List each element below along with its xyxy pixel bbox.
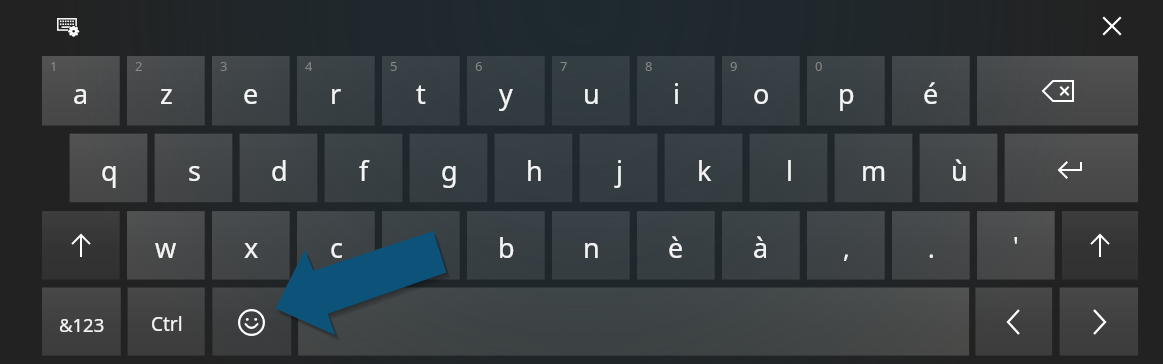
staticText: 4: [305, 57, 313, 75]
staticText: m: [861, 152, 887, 189]
staticText: p: [838, 75, 855, 112]
button[interactable]: 9: [722, 56, 800, 126]
staticText: x: [244, 229, 259, 266]
button[interactable]: Close: [1096, 10, 1127, 41]
button[interactable]: Keyboard settings: [50, 11, 84, 41]
staticText: 5: [390, 57, 398, 75]
button[interactable]: b: [467, 211, 545, 280]
button[interactable]: c: [297, 211, 375, 280]
button[interactable]: 1: [42, 56, 120, 126]
button[interactable]: h: [495, 134, 573, 203]
button[interactable]: l: [750, 134, 828, 203]
staticText: q: [101, 152, 118, 189]
button[interactable]: ù: [920, 134, 998, 203]
button[interactable]: ': [977, 211, 1055, 280]
button[interactable]: 2: [127, 56, 205, 126]
button[interactable]: Cursor right: [1060, 288, 1138, 356]
staticText: à: [753, 229, 769, 266]
staticText: 6: [475, 57, 483, 75]
button[interactable]: Shift: [42, 211, 120, 280]
button[interactable]: &123: [42, 288, 121, 356]
button[interactable]: 0: [807, 56, 885, 126]
button[interactable]: Backspace: [977, 56, 1138, 126]
staticText: v: [414, 229, 428, 266]
button[interactable]: ,: [807, 211, 885, 280]
button[interactable]: w: [127, 211, 205, 280]
button[interactable]: m: [835, 134, 913, 203]
button[interactable]: 8: [637, 56, 715, 126]
staticText: b: [498, 229, 515, 266]
button[interactable]: 6: [467, 56, 545, 126]
staticText: 3: [220, 57, 228, 75]
button[interactable]: 7: [552, 56, 630, 126]
staticText: s: [188, 152, 201, 189]
staticText: z: [160, 75, 173, 112]
button[interactable]: Emoji: [212, 288, 291, 356]
button[interactable]: v: [382, 211, 460, 280]
button[interactable]: s: [155, 134, 233, 203]
staticText: ': [1013, 228, 1019, 262]
button[interactable]: Cursor left: [975, 288, 1052, 356]
staticText: t: [416, 75, 426, 112]
staticText: k: [697, 152, 712, 189]
staticText: 2: [135, 57, 143, 75]
staticText: ,: [843, 231, 850, 265]
button[interactable]: à: [722, 211, 800, 280]
staticText: 1: [50, 57, 58, 75]
staticText: w: [155, 229, 177, 266]
staticText: o: [753, 75, 770, 112]
staticText: g: [441, 152, 458, 189]
button[interactable]: è: [637, 211, 715, 280]
button[interactable]: Ctrl: [128, 288, 205, 356]
staticText: l: [786, 152, 793, 189]
staticText: c: [330, 229, 343, 266]
staticText: Ctrl: [151, 311, 183, 337]
staticText: 9: [730, 57, 738, 75]
button[interactable]: Space: [298, 288, 969, 356]
button[interactable]: x: [212, 211, 290, 280]
button[interactable]: d: [240, 134, 318, 203]
button[interactable]: .: [892, 211, 970, 280]
staticText: .: [928, 231, 935, 265]
staticText: a: [73, 75, 89, 112]
staticText: e: [243, 75, 259, 112]
staticText: d: [271, 152, 288, 189]
staticText: 8: [645, 57, 653, 75]
staticText: n: [583, 229, 600, 266]
button[interactable]: Shift: [1062, 211, 1138, 280]
button[interactable]: Enter: [1005, 134, 1138, 203]
button[interactable]: 4: [297, 56, 375, 126]
staticText: &123: [59, 312, 105, 337]
staticText: i: [673, 75, 680, 112]
staticText: è: [668, 229, 684, 266]
staticText: j: [616, 152, 623, 189]
button[interactable]: g: [410, 134, 488, 203]
staticText: ù: [951, 152, 968, 189]
button[interactable]: 5: [382, 56, 460, 126]
staticText: f: [359, 152, 369, 189]
staticText: h: [526, 152, 543, 189]
staticText: é: [923, 75, 939, 112]
staticText: r: [330, 75, 342, 112]
staticText: u: [583, 75, 600, 112]
button[interactable]: j: [580, 134, 658, 203]
staticText: y: [499, 75, 513, 112]
button[interactable]: n: [552, 211, 630, 280]
button[interactable]: q: [70, 134, 148, 203]
staticText: 7: [560, 57, 568, 75]
staticText: 0: [815, 57, 823, 75]
button[interactable]: f: [325, 134, 403, 203]
button[interactable]: 3: [212, 56, 290, 126]
button[interactable]: é: [892, 56, 970, 126]
button[interactable]: k: [665, 134, 743, 203]
